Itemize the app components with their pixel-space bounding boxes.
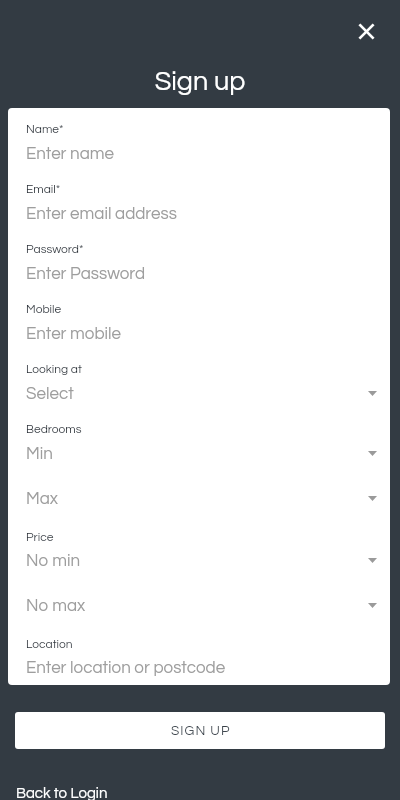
staticText: Enter name: [26, 145, 115, 163]
button[interactable]: Price: [17, 528, 381, 573]
staticText: SIGN UP: [171, 724, 231, 738]
staticText: Max: [26, 490, 59, 508]
staticText: Min: [26, 445, 53, 463]
staticText: Enter mobile: [26, 325, 121, 343]
staticText: Mobile: [26, 303, 62, 315]
button[interactable]: Bedrooms: [17, 420, 381, 466]
staticText: Sign up: [0, 68, 400, 96]
staticText: Select: [26, 385, 74, 403]
button[interactable]: Email*: [17, 180, 381, 226]
staticText: No max: [26, 597, 86, 615]
staticText: Looking at: [26, 363, 82, 375]
staticText: Enter location or postcode: [26, 659, 226, 677]
button[interactable]: SIGN UP: [15, 712, 385, 749]
staticText: Password*: [26, 243, 84, 255]
staticText: Location: [26, 638, 73, 650]
staticText: No min: [26, 552, 81, 570]
staticText: Enter Password: [26, 265, 146, 283]
button[interactable]: Location: [17, 635, 381, 680]
staticText: Email*: [26, 183, 61, 195]
button[interactable]: Name*: [17, 120, 381, 166]
staticText: Bedrooms: [26, 423, 82, 435]
button[interactable]: Max: [17, 487, 381, 511]
staticText: Name*: [26, 123, 64, 135]
button[interactable]: Mobile: [17, 300, 381, 346]
button[interactable]: Password*: [17, 240, 381, 286]
button[interactable]: Back to Login: [15, 781, 111, 800]
staticText: Price: [26, 531, 54, 543]
button[interactable]: Close: [350, 15, 382, 47]
button[interactable]: Looking at: [17, 360, 381, 406]
staticText: Enter email address: [26, 205, 177, 223]
staticText: Back to Login: [16, 786, 108, 800]
button[interactable]: No max: [17, 594, 381, 618]
